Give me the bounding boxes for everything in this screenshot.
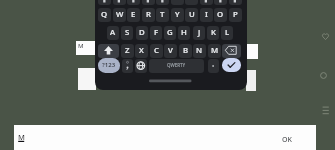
staticText: Y bbox=[175, 9, 180, 20]
staticText: K bbox=[211, 27, 216, 38]
staticText: I bbox=[205, 9, 208, 20]
staticText: O bbox=[217, 9, 224, 20]
staticText: Z bbox=[125, 45, 130, 56]
staticText: A bbox=[110, 27, 116, 38]
staticText: M bbox=[18, 132, 25, 142]
staticText: D bbox=[139, 27, 145, 38]
staticText: C bbox=[154, 45, 159, 56]
staticText: QWERTY bbox=[167, 62, 186, 68]
staticText: L bbox=[225, 27, 230, 38]
staticText: U bbox=[189, 9, 195, 20]
staticText: Q bbox=[101, 9, 108, 20]
staticText: M bbox=[78, 42, 84, 50]
staticText: V bbox=[168, 45, 173, 56]
staticText: OK bbox=[282, 135, 292, 145]
staticText: R bbox=[146, 9, 151, 20]
staticText: T bbox=[160, 9, 165, 20]
staticText: G bbox=[167, 27, 173, 38]
staticText: M bbox=[211, 45, 219, 56]
staticText: E bbox=[131, 9, 136, 20]
staticText: P bbox=[233, 9, 238, 20]
staticText: H bbox=[181, 27, 187, 38]
staticText: F bbox=[154, 27, 159, 38]
staticText: B bbox=[183, 45, 189, 56]
staticText: J bbox=[198, 27, 201, 38]
staticText: ?123 bbox=[102, 61, 116, 69]
staticText: S bbox=[125, 27, 130, 38]
staticText: W bbox=[116, 9, 124, 20]
staticText: X bbox=[139, 45, 144, 56]
staticText: N bbox=[196, 45, 203, 56]
